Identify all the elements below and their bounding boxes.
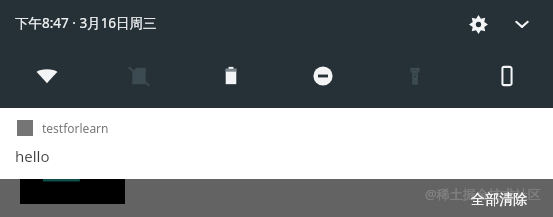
button[interactable]: Wi-Fi <box>0 48 93 104</box>
button[interactable]: testforlearn <box>0 108 553 179</box>
button[interactable]: Do not disturb <box>277 48 369 104</box>
staticText: @稀土掘金技术社区 <box>425 185 541 203</box>
button[interactable]: 全部清除 <box>467 189 531 211</box>
staticText: hello <box>15 146 50 166</box>
button[interactable]: Expand <box>503 5 541 43</box>
button[interactable] <box>20 179 125 204</box>
staticText: 全部清除 <box>471 191 527 209</box>
button[interactable]: Battery saver <box>185 48 277 104</box>
button[interactable]: Auto rotate <box>461 48 553 104</box>
button[interactable]: Settings <box>459 5 497 43</box>
button[interactable]: Flashlight <box>369 48 461 104</box>
staticText: testforlearn <box>42 120 109 136</box>
staticText: 下午8:47 · 3月16日周三 <box>15 14 157 32</box>
button[interactable]: Mobile data off <box>93 48 185 104</box>
